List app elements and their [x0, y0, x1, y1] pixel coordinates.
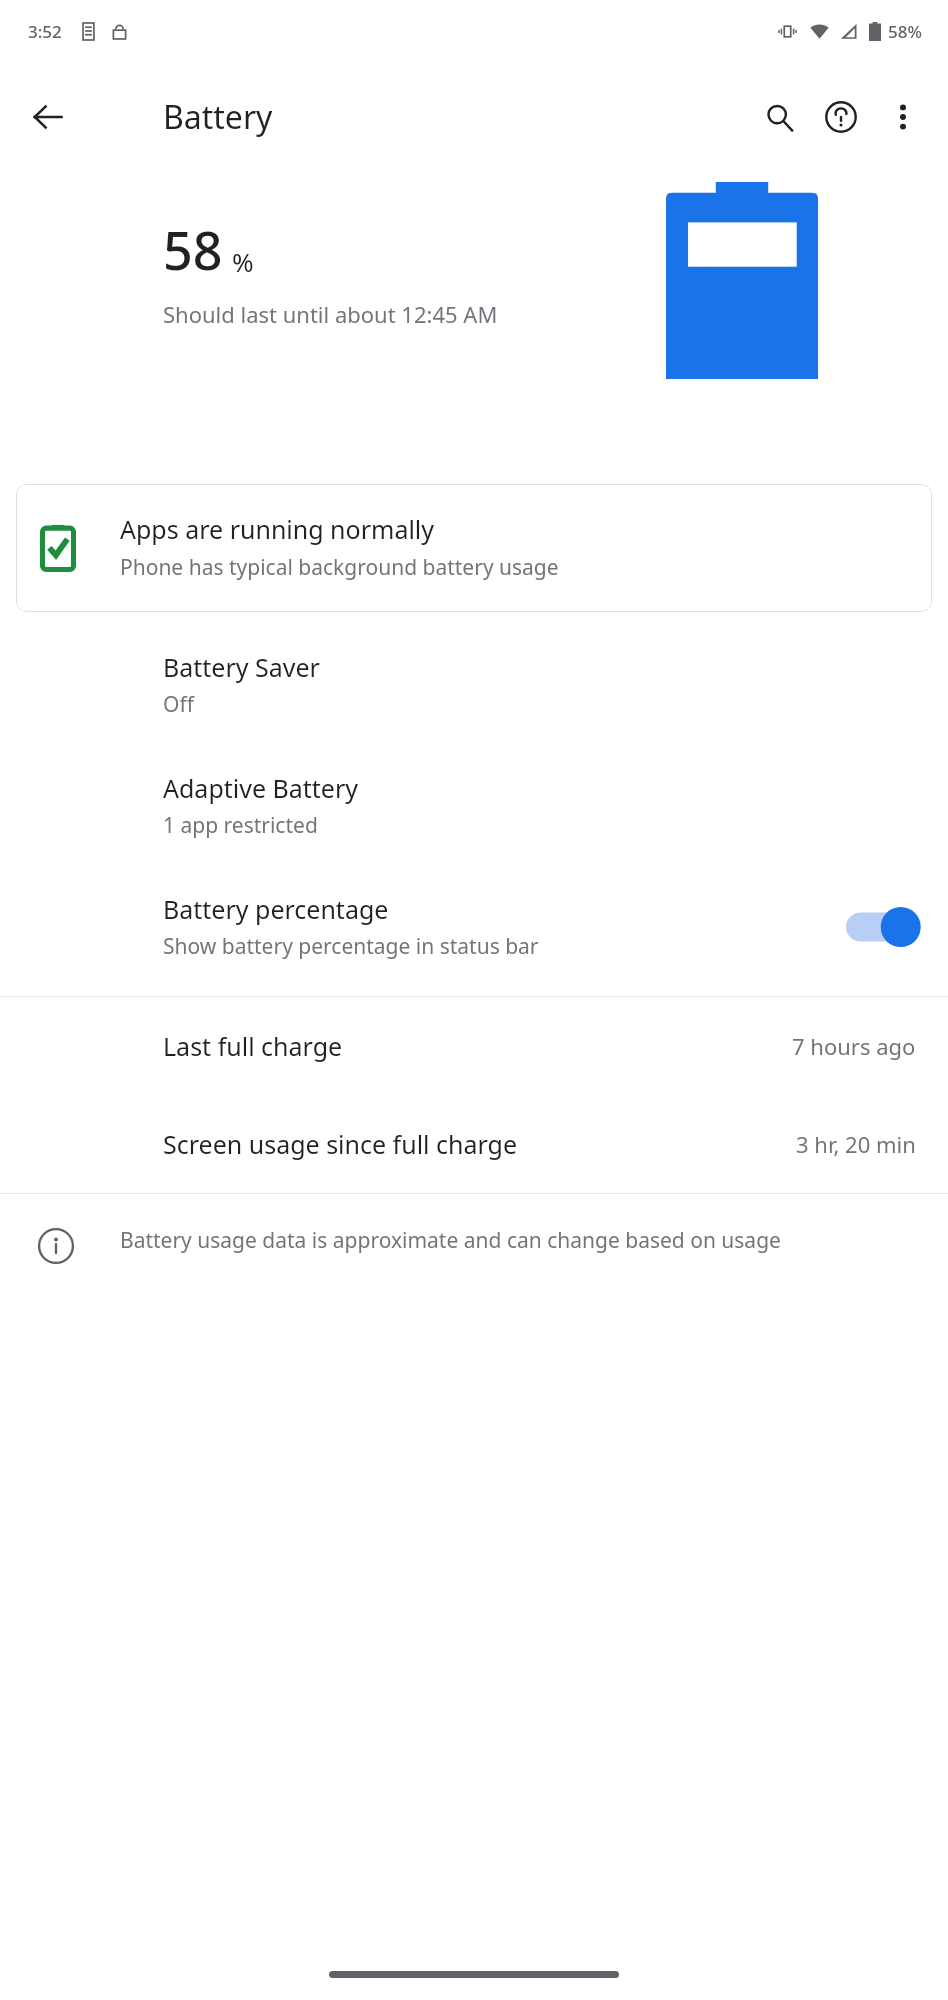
staticText: %: [232, 244, 254, 279]
staticText: Apps are running normally: [120, 512, 435, 546]
staticText: 58: [163, 214, 223, 285]
staticText: Battery Saver: [163, 650, 320, 684]
staticText: Battery usage data is approximate and ca…: [120, 1226, 781, 1255]
staticText: Battery: [163, 95, 273, 139]
staticText: Screen usage since full charge: [163, 1127, 518, 1161]
button[interactable]: Last full charge: [0, 997, 948, 1095]
staticText: 3:52: [28, 20, 62, 43]
staticText: Adaptive Battery: [163, 771, 359, 805]
staticText: Last full charge: [163, 1029, 343, 1063]
button[interactable]: Battery Saver: [0, 624, 948, 745]
staticText: 58%: [888, 20, 922, 43]
button[interactable]: Apps are running normally: [16, 484, 932, 612]
button[interactable]: Screen usage since full charge: [0, 1095, 948, 1193]
staticText: Phone has typical background battery usa…: [120, 553, 559, 582]
staticText: Off: [163, 690, 194, 719]
staticText: Should last until about 12:45 AM: [163, 299, 498, 329]
staticText: 7 hours ago: [792, 1031, 916, 1061]
staticText: Battery percentage: [163, 892, 389, 926]
button[interactable]: Back: [16, 85, 80, 149]
button[interactable]: Search: [748, 86, 810, 148]
button[interactable]: Battery percentage: [0, 866, 948, 987]
button[interactable]: More options: [872, 86, 934, 148]
staticText: 3 hr, 20 min: [796, 1129, 916, 1159]
staticText: Show battery percentage in status bar: [163, 932, 539, 961]
button[interactable]: Help: [810, 86, 872, 148]
button[interactable]: Adaptive Battery: [0, 745, 948, 866]
staticText: 1 app restricted: [163, 811, 318, 840]
